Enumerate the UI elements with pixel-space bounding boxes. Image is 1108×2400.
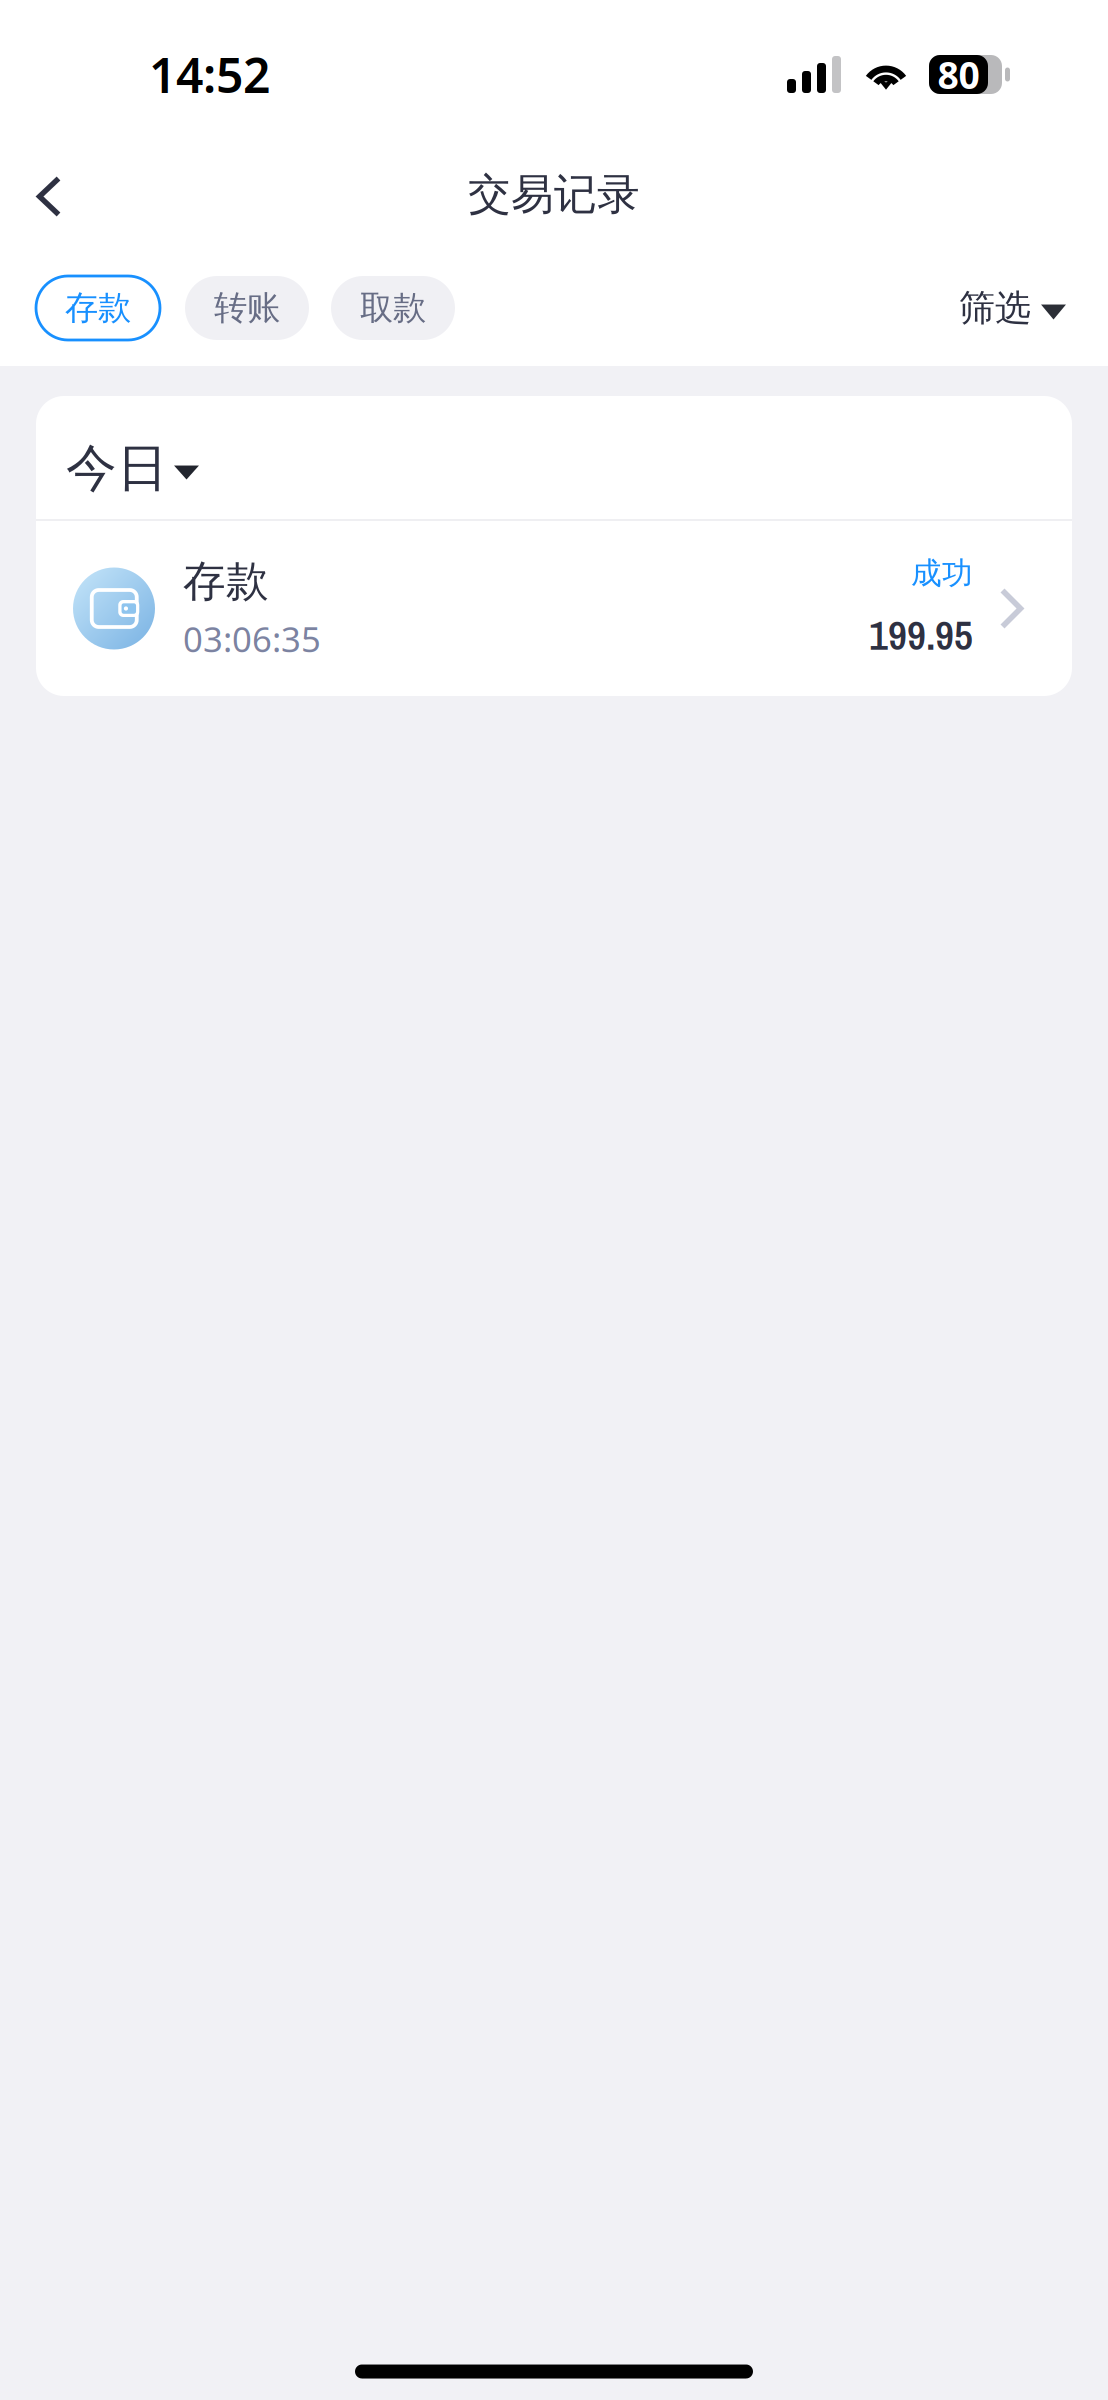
staticText: 筛选 [959,286,1031,330]
staticText: 199.95 [869,607,973,663]
staticText: 转账 [214,287,280,328]
staticText: 今日 [66,437,168,500]
button[interactable]: 转账 [185,276,309,340]
staticText: 成功 [911,554,973,592]
button[interactable]: 今日 [36,396,1072,519]
staticText: 80 [937,50,979,99]
button[interactable]: Back [0,139,90,250]
staticText: 交易记录 [468,168,640,221]
button[interactable]: 存款 [36,521,1072,696]
button[interactable]: 取款 [331,276,455,340]
button[interactable]: 存款 [36,276,160,340]
staticText: 存款 [183,555,269,608]
button[interactable]: 筛选 [959,269,1066,347]
staticText: 取款 [360,287,426,328]
staticText: 03:06:35 [183,616,321,662]
staticText: 存款 [65,287,131,328]
staticText: 14:52 [149,43,270,106]
